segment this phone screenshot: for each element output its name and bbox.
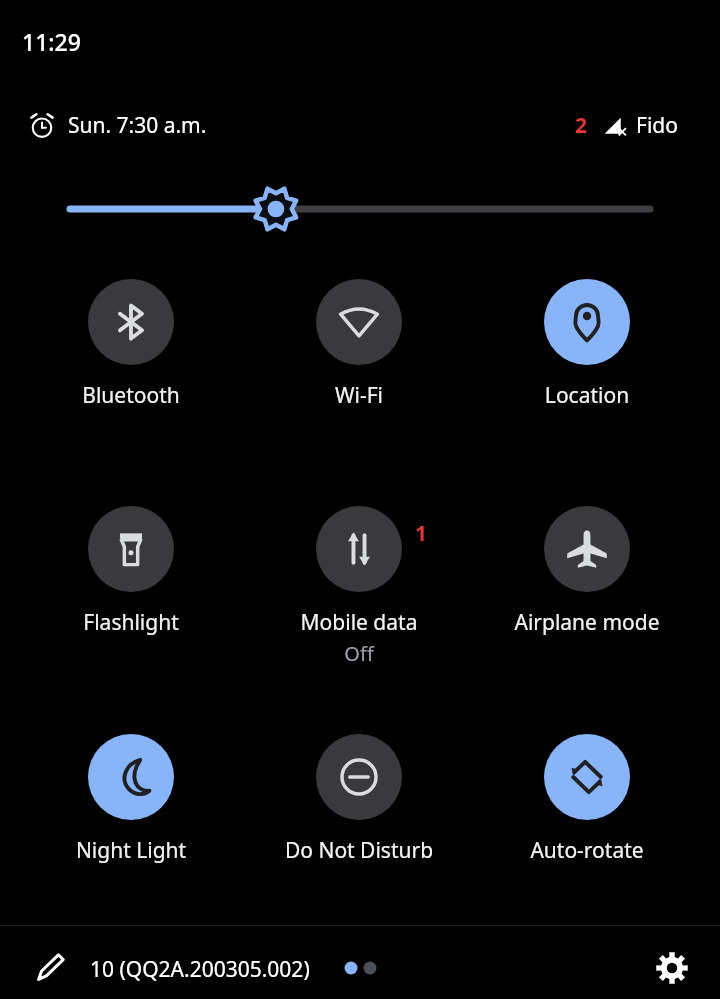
staticText: Auto-rotate [509,836,665,865]
button[interactable]: Flashlight [53,506,209,637]
staticText: Night Light [53,836,209,865]
button[interactable]: Location [509,279,665,410]
staticText: Do Not Disturb [281,836,437,865]
staticText: 10 (QQ2A.200305.002) [90,955,310,984]
button[interactable]: Edit tiles [24,942,76,994]
button[interactable]: Brightness [60,186,660,232]
button[interactable]: Airplane mode [509,506,665,637]
staticText: 1 [415,519,428,548]
staticText: Off [281,640,437,667]
staticText: Wi-Fi [281,381,437,410]
staticText: Airplane mode [509,608,665,637]
staticText: Sun. 7:30 a.m. [68,111,207,140]
staticText: 11:29 [22,26,81,57]
staticText: Flashlight [53,608,209,637]
staticText: Fido [636,111,678,140]
button[interactable]: Wi-Fi [281,279,437,410]
button[interactable]: Night Light [53,734,209,865]
staticText: Bluetooth [53,381,209,410]
button[interactable]: Bluetooth [53,279,209,410]
staticText: Location [509,381,665,410]
button[interactable]: Settings [645,941,699,995]
staticText: 2 [575,111,588,140]
button[interactable]: Do Not Disturb [281,734,437,865]
button[interactable]: Auto-rotate [509,734,665,865]
staticText: Mobile data [281,608,437,637]
button[interactable]: Mobile data [281,506,437,667]
